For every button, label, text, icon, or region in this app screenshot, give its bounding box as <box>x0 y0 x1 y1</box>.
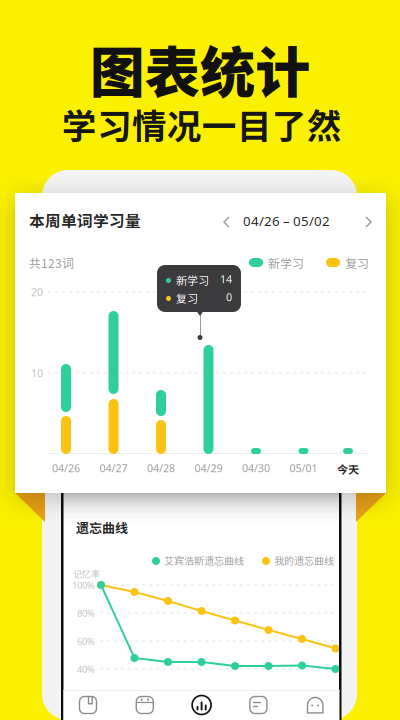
button[interactable]: Review <box>117 690 172 720</box>
button[interactable]: Previous week <box>214 208 240 236</box>
staticText: 复习 <box>176 290 198 306</box>
button[interactable]: Notes <box>231 690 286 720</box>
staticText: 记忆率 <box>73 567 100 580</box>
staticText: 遗忘曲线 <box>76 518 128 537</box>
button[interactable]: Statistics <box>174 690 229 720</box>
staticText: 04/30 <box>242 461 270 475</box>
staticText: 今天 <box>337 461 359 477</box>
staticText: 复习 <box>345 254 369 271</box>
staticText: 80% <box>77 607 95 619</box>
staticText: 04/29 <box>194 461 222 475</box>
staticText: 10 <box>31 366 43 380</box>
staticText: 40% <box>77 663 95 675</box>
staticText: 图表统计 <box>90 29 310 109</box>
staticText: 100% <box>72 579 95 591</box>
staticText: 0 <box>226 290 232 304</box>
staticText: 04/28 <box>147 461 175 475</box>
staticText: 04/26 <box>52 461 80 475</box>
staticText: 05/01 <box>289 461 317 475</box>
staticText: 共123词 <box>29 254 74 271</box>
button[interactable]: Next week <box>355 208 381 236</box>
button[interactable]: Profile <box>288 690 343 720</box>
button[interactable]: Dictionary <box>60 690 115 720</box>
staticText: 04/27 <box>99 461 127 475</box>
staticText: 60% <box>77 635 95 647</box>
staticText: 04/26 – 05/02 <box>243 212 330 230</box>
staticText: 14 <box>220 272 232 286</box>
staticText: 我的遗忘曲线 <box>274 553 334 567</box>
staticText: 艾宾浩斯遗忘曲线 <box>164 553 244 567</box>
staticText: 20 <box>31 285 43 299</box>
staticText: 本周单词学习量 <box>29 209 141 232</box>
staticText: 新学习 <box>268 254 304 271</box>
staticText: 学习情况一目了然 <box>62 99 342 149</box>
staticText: 新学习 <box>176 272 209 288</box>
